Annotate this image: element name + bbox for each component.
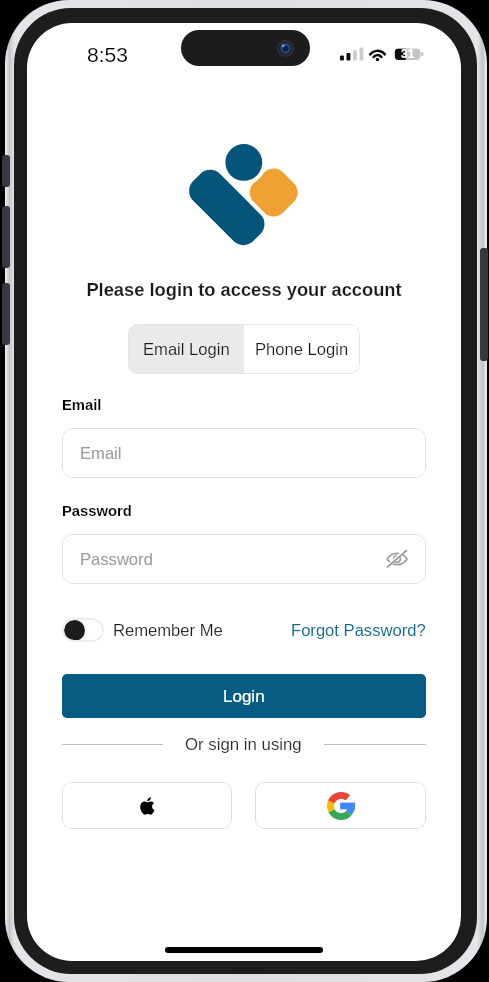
staticText: 8:53 <box>87 43 128 66</box>
staticText: 31 <box>401 47 415 60</box>
button[interactable]: Remember Me <box>62 618 223 642</box>
button[interactable]: Sign in with Google <box>255 782 426 829</box>
staticText: Password <box>62 503 132 520</box>
staticText: Email Login <box>143 340 230 359</box>
button[interactable]: Phone Login <box>244 324 360 374</box>
button[interactable]: Forgot Password? <box>291 621 426 640</box>
button[interactable]: Sign in with Apple <box>62 782 232 829</box>
staticText: Login <box>223 687 265 706</box>
button[interactable]: Email Login <box>128 324 244 374</box>
staticText: Or sign in using <box>185 735 302 754</box>
staticText: Remember Me <box>113 621 223 640</box>
button[interactable]: Show password <box>382 544 412 574</box>
staticText: Please login to access your account <box>27 279 461 299</box>
button[interactable]: Login <box>62 674 426 718</box>
button[interactable]: Password <box>62 534 426 584</box>
button[interactable]: Email <box>62 428 426 478</box>
staticText: Email <box>62 397 102 414</box>
staticText: Password <box>80 550 153 569</box>
staticText: Phone Login <box>255 340 349 359</box>
staticText: Email <box>80 444 122 463</box>
